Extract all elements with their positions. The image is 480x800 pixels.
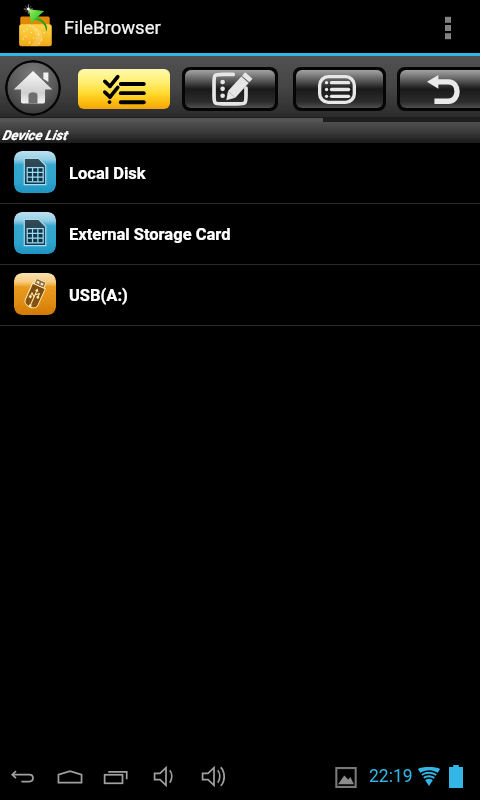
button[interactable]: Local Disk: [0, 143, 480, 204]
button[interactable]: USB(A:): [0, 265, 480, 326]
staticText: FileBrowser: [64, 17, 161, 39]
staticText: External Storage Card: [69, 225, 231, 244]
button[interactable]: Back: [400, 70, 480, 108]
staticText: Local Disk: [69, 164, 146, 183]
button[interactable]: Volume up: [192, 753, 236, 800]
button[interactable]: External Storage Card: [0, 204, 480, 265]
staticText: USB(A:): [69, 286, 128, 305]
button[interactable]: Back: [0, 753, 44, 800]
button[interactable]: Recent apps: [96, 753, 140, 800]
button[interactable]: Home: [5, 60, 61, 116]
button[interactable]: Home: [48, 753, 92, 800]
button[interactable]: Edit: [185, 70, 275, 108]
staticText: 22:19: [369, 766, 413, 787]
button[interactable]: More options: [430, 0, 466, 53]
button[interactable]: Select all: [78, 69, 170, 109]
button[interactable]: Details: [296, 70, 383, 108]
staticText: Device List: [2, 127, 67, 143]
button[interactable]: Volume down: [144, 753, 188, 800]
